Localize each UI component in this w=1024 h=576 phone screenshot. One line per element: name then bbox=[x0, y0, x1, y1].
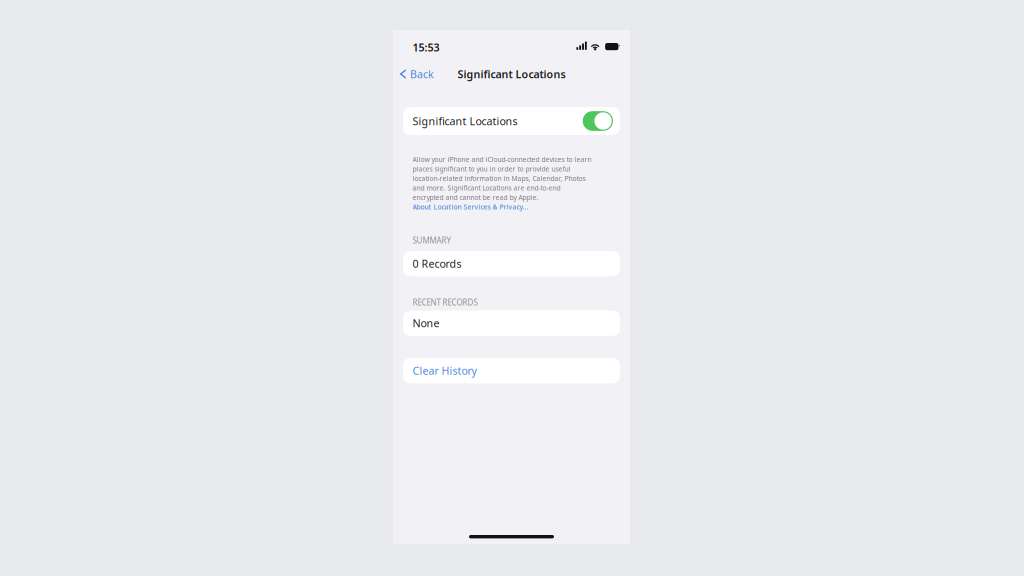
staticText: Allow your iPhone and iCloud-connected d… bbox=[412, 155, 591, 164]
button[interactable]: About Location Services & Privacy... bbox=[412, 202, 528, 211]
button[interactable]: Clear History bbox=[403, 358, 620, 383]
staticText: Back bbox=[410, 67, 434, 81]
button[interactable]: 0 Records bbox=[403, 251, 620, 276]
staticText: 15:53 bbox=[412, 40, 439, 54]
button[interactable]: Back bbox=[393, 62, 442, 86]
staticText: places significant to you in order to pr… bbox=[412, 164, 570, 173]
button[interactable]: Significant Locations bbox=[403, 107, 620, 135]
staticText: Significant Locations bbox=[457, 67, 565, 81]
button[interactable]: None bbox=[403, 310, 620, 336]
staticText: SUMMARY bbox=[412, 235, 451, 246]
staticText: RECENT RECORDS bbox=[412, 297, 477, 308]
staticText: Significant Locations bbox=[412, 114, 517, 128]
staticText: and more. Significant Locations are end-… bbox=[412, 183, 560, 192]
staticText: About Location Services & Privacy... bbox=[412, 202, 528, 211]
staticText: location-related information in Maps, Ca… bbox=[412, 174, 585, 183]
staticText: None bbox=[412, 316, 439, 330]
staticText: Clear History bbox=[412, 364, 476, 378]
staticText: 0 Records bbox=[412, 257, 461, 271]
staticText: encrypted and cannot be read by Apple. bbox=[412, 193, 538, 202]
